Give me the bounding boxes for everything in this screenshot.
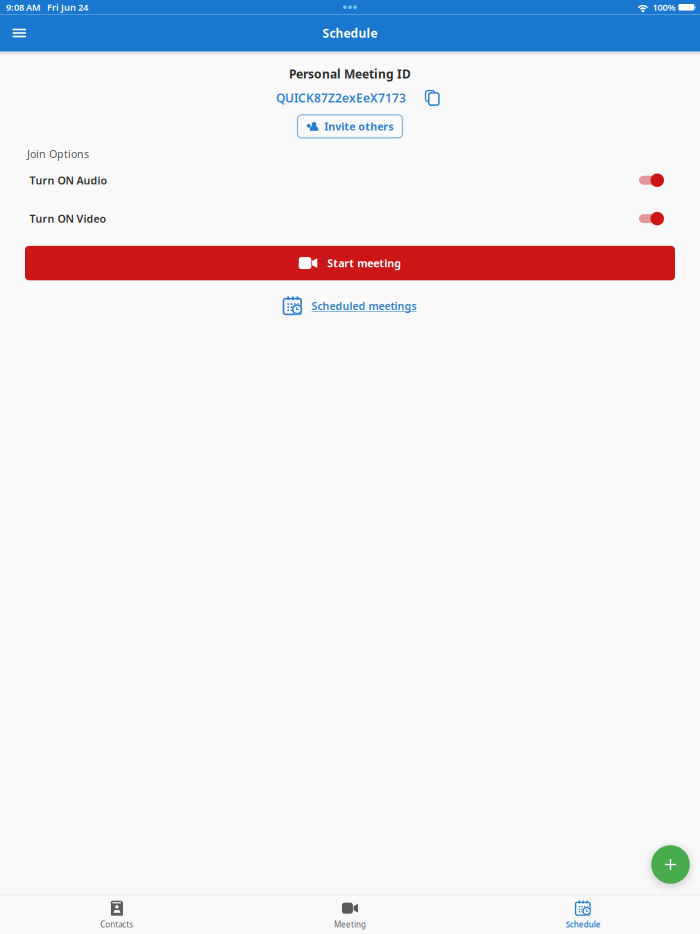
button[interactable]: Copy meeting ID	[406, 89, 439, 107]
staticText: 100%	[652, 1, 675, 13]
staticText: Turn ON Video	[29, 212, 106, 226]
button[interactable]: Invite others	[297, 115, 402, 138]
button[interactable]: Turn ON Audio	[0, 161, 700, 199]
staticText: Turn ON Audio	[29, 173, 107, 187]
button[interactable]: Turn ON Video	[0, 199, 700, 238]
staticText: Meeting	[334, 919, 366, 930]
button[interactable]: Contacts	[0, 892, 233, 934]
button[interactable]: Meeting	[233, 892, 467, 934]
button[interactable]: QUICK87Z2exEeX7173	[276, 88, 406, 108]
staticText: Invite others	[324, 119, 393, 133]
staticText: Join Options	[27, 147, 89, 161]
staticText: Start meeting	[327, 256, 401, 270]
button[interactable]: Scheduled meetings	[283, 292, 416, 319]
staticText: Contacts	[100, 919, 133, 930]
button[interactable]: New meeting	[646, 840, 694, 888]
button[interactable]: Schedule	[467, 892, 700, 934]
staticText: Schedule	[566, 919, 601, 930]
button[interactable]: Menu	[0, 16, 39, 50]
staticText: Personal Meeting ID	[289, 66, 411, 82]
staticText: Fri Jun 24	[47, 1, 88, 13]
staticText: Schedule	[322, 25, 377, 41]
staticText: Scheduled meetings	[311, 299, 416, 313]
button[interactable]: Start meeting	[25, 246, 675, 280]
staticText: 9:08 AM	[6, 1, 41, 13]
staticText: QUICK87Z2exEeX7173	[276, 90, 406, 106]
